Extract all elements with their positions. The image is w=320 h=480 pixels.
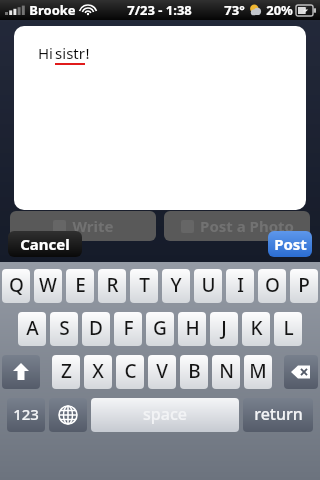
button[interactable]: Q (2, 269, 30, 303)
staticText: sistr (55, 43, 85, 63)
staticText: A (26, 315, 39, 341)
button[interactable]: H (178, 312, 206, 346)
staticText: space (143, 403, 187, 425)
button[interactable]: M (244, 355, 272, 389)
staticText: N (219, 358, 234, 384)
button[interactable]: return (243, 398, 313, 432)
staticText: M (249, 358, 267, 384)
button[interactable]: Backspace (284, 355, 318, 389)
staticText: L (283, 315, 294, 341)
button[interactable]: Cancel (8, 231, 82, 257)
staticText: 123 (13, 404, 39, 424)
staticText: I (237, 272, 244, 298)
button[interactable]: V (148, 355, 176, 389)
staticText: Z (61, 358, 72, 384)
staticText: 7/23 - 1:38 (127, 1, 192, 19)
staticText: K (250, 315, 263, 341)
button[interactable]: S (50, 312, 78, 346)
staticText: C (124, 358, 137, 384)
staticText: J (221, 315, 227, 341)
staticText: return (254, 403, 303, 425)
button[interactable]: Post (268, 231, 312, 257)
button[interactable]: G (146, 312, 174, 346)
button[interactable]: P (290, 269, 318, 303)
staticText: B (188, 358, 201, 384)
button[interactable]: Write (10, 211, 156, 241)
staticText: V (156, 358, 168, 384)
staticText: 20% (266, 1, 293, 19)
button[interactable]: Hi (14, 26, 306, 210)
button[interactable]: C (116, 355, 144, 389)
button[interactable]: N (212, 355, 240, 389)
staticText: Hi (36, 43, 55, 63)
button[interactable]: U (194, 269, 222, 303)
button[interactable]: E (66, 269, 94, 303)
staticText: W (39, 272, 57, 298)
button[interactable]: I (226, 269, 254, 303)
button[interactable]: K (242, 312, 270, 346)
button[interactable]: 123 (7, 398, 45, 432)
staticText: ! (85, 43, 90, 63)
button[interactable]: Switch language (49, 398, 87, 432)
button[interactable]: F (114, 312, 142, 346)
button[interactable]: L (274, 312, 302, 346)
button[interactable]: T (130, 269, 158, 303)
button[interactable]: J (210, 312, 238, 346)
staticText: R (106, 272, 119, 298)
staticText: P (298, 272, 310, 298)
button[interactable]: Shift (2, 355, 40, 389)
staticText: G (153, 315, 167, 341)
button[interactable]: space (91, 398, 239, 432)
staticText: Brooke (29, 1, 76, 19)
staticText: F (123, 315, 134, 341)
staticText: U (201, 272, 216, 298)
staticText: Post a Photo (200, 216, 294, 236)
staticText: Write (72, 216, 114, 236)
button[interactable]: B (180, 355, 208, 389)
staticText: H (185, 315, 200, 341)
staticText: D (89, 315, 103, 341)
button[interactable]: R (98, 269, 126, 303)
staticText: O (265, 272, 280, 298)
button[interactable]: D (82, 312, 110, 346)
button[interactable]: A (18, 312, 46, 346)
button[interactable]: W (34, 269, 62, 303)
staticText: E (75, 272, 86, 298)
button[interactable]: X (84, 355, 112, 389)
staticText: Post (274, 234, 307, 254)
staticText: Cancel (20, 234, 70, 254)
staticText: Q (9, 272, 24, 298)
staticText: X (92, 358, 104, 384)
staticText: T (139, 272, 150, 298)
button[interactable]: O (258, 269, 286, 303)
staticText: S (59, 315, 70, 341)
staticText: 73° (224, 1, 245, 19)
staticText: Y (170, 272, 182, 298)
button[interactable]: Post a Photo (164, 211, 310, 241)
button[interactable]: Z (52, 355, 80, 389)
button[interactable]: Y (162, 269, 190, 303)
